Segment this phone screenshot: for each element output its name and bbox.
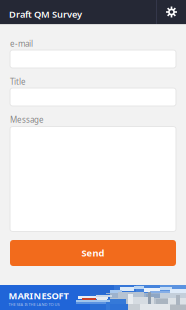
- staticText: Send: [81, 247, 104, 259]
- staticText: e-mail: [10, 38, 33, 49]
- staticText: MARINESOFT: [8, 289, 68, 302]
- staticText: Title: [10, 76, 26, 87]
- button[interactable]: Settings: [157, 0, 186, 24]
- staticText: THE SEA IS THE LAND TO US: [8, 302, 59, 307]
- button[interactable]: Text field: [10, 88, 176, 106]
- staticText: Draft QM Survey: [9, 8, 82, 20]
- button[interactable]: Send: [10, 240, 176, 266]
- button[interactable]: Text field: [10, 126, 176, 231]
- button[interactable]: Text field: [10, 50, 176, 68]
- button[interactable]: MarineSoft advertisement: [0, 285, 186, 310]
- staticText: Message: [10, 114, 44, 125]
